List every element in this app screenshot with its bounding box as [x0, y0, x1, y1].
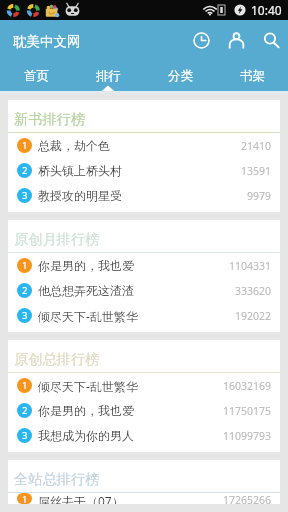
button[interactable]: 3: [8, 303, 280, 328]
staticText: 333620: [235, 284, 272, 298]
staticText: 排行: [96, 68, 121, 84]
staticText: 1104331: [229, 259, 272, 273]
button[interactable]: 2: [8, 158, 280, 183]
staticText: 2: [22, 404, 28, 417]
staticText: 17265266: [223, 493, 272, 504]
staticText: 2: [22, 284, 28, 297]
staticText: 3: [22, 309, 28, 322]
button[interactable]: 1: [8, 253, 280, 278]
staticText: 1: [22, 139, 28, 152]
button[interactable]: 2: [8, 278, 280, 303]
staticText: 耽美中文网: [13, 33, 81, 50]
button[interactable]: 排行: [72, 62, 144, 91]
staticText: 屌丝去干（07）: [38, 493, 223, 504]
staticText: 原创月排行榜: [14, 230, 100, 248]
staticText: 我想成为你的男人: [38, 428, 223, 443]
button[interactable]: 分类: [144, 62, 216, 91]
staticText: 10:40: [251, 2, 282, 18]
button[interactable]: Account: [223, 28, 249, 54]
staticText: 新书排行榜: [14, 110, 85, 128]
staticText: 3: [22, 189, 28, 202]
staticText: 9979: [247, 189, 272, 203]
button[interactable]: 3: [8, 183, 280, 208]
button[interactable]: History: [188, 28, 214, 54]
staticText: 11099793: [223, 429, 272, 443]
staticText: 192022: [235, 309, 272, 323]
button[interactable]: 1: [8, 493, 280, 504]
staticText: 21410: [241, 139, 272, 153]
staticText: 倾尽天下-乱世繁华: [38, 378, 223, 394]
staticText: 1: [22, 379, 28, 392]
button[interactable]: Search: [258, 28, 284, 54]
staticText: 1: [22, 493, 28, 504]
staticText: 桥头镇上桥头村: [38, 163, 241, 178]
staticText: 首页: [24, 68, 49, 84]
staticText: 2: [22, 164, 28, 177]
staticText: 倾尽天下-乱世繁华: [38, 308, 235, 324]
staticText: 总裁，劫个色: [38, 138, 241, 153]
button[interactable]: 3: [8, 423, 280, 448]
staticText: 他总想弄死这渣渣: [38, 283, 235, 298]
staticText: 3: [22, 429, 28, 442]
button[interactable]: 首页: [0, 62, 72, 91]
staticText: 教授攻的明星受: [38, 188, 247, 203]
staticText: 你是男的，我也爱: [38, 258, 229, 273]
staticText: 分类: [168, 68, 193, 84]
staticText: 1: [22, 259, 28, 272]
staticText: 13591: [241, 164, 272, 178]
button[interactable]: 1: [8, 373, 280, 398]
staticText: 原创总排行榜: [14, 350, 100, 368]
button[interactable]: 2: [8, 398, 280, 423]
staticText: 书架: [240, 68, 265, 84]
staticText: 你是男的，我也爱: [38, 403, 223, 418]
button[interactable]: 书架: [216, 62, 288, 91]
button[interactable]: 1: [8, 133, 280, 158]
staticText: 16032169: [223, 379, 272, 393]
staticText: 11750175: [223, 404, 272, 418]
staticText: 全站总排行榜: [14, 470, 100, 488]
